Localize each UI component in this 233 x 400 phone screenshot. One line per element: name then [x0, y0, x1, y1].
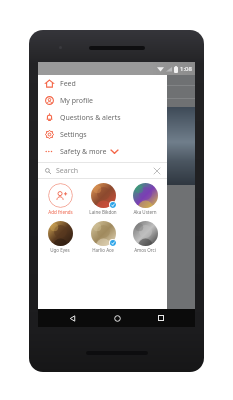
button[interactable]: Harlio Ace — [83, 221, 123, 253]
staticText: Search — [56, 166, 152, 176]
button[interactable]: Feed — [38, 75, 167, 92]
staticText: Laine Bikdon — [89, 209, 117, 215]
staticText: Ugo Eyes — [50, 247, 70, 253]
staticText: Feed — [60, 79, 76, 89]
staticText: Add friends — [48, 209, 73, 215]
button[interactable]: Aka Ustern — [125, 183, 165, 215]
button[interactable]: My profile — [38, 92, 167, 109]
button[interactable]: Add friends — [40, 183, 80, 215]
button[interactable]: Search — [38, 163, 167, 178]
button[interactable]: Safety & more — [38, 143, 167, 160]
button[interactable]: Recent apps — [150, 309, 172, 327]
staticText: Aka Ustern — [133, 209, 157, 215]
staticText: My profile — [60, 96, 93, 106]
button[interactable]: Laine Bikdon — [83, 183, 123, 215]
button[interactable]: Ugo Eyes — [40, 221, 80, 253]
button[interactable]: Home — [106, 309, 128, 327]
staticText: Amos Orci — [134, 247, 156, 253]
button[interactable]: Questions & alerts — [38, 109, 167, 126]
button[interactable]: Settings — [38, 126, 167, 143]
button[interactable]: Back — [61, 309, 83, 327]
staticText: 1:08 — [180, 65, 192, 73]
staticText: Questions & alerts — [60, 113, 121, 123]
button[interactable]: Clear search — [152, 166, 161, 175]
button[interactable]: Amos Orci — [125, 221, 165, 253]
staticText: Harlio Ace — [92, 247, 114, 253]
staticText: Settings — [60, 130, 87, 140]
staticText: Safety & more — [60, 147, 107, 157]
